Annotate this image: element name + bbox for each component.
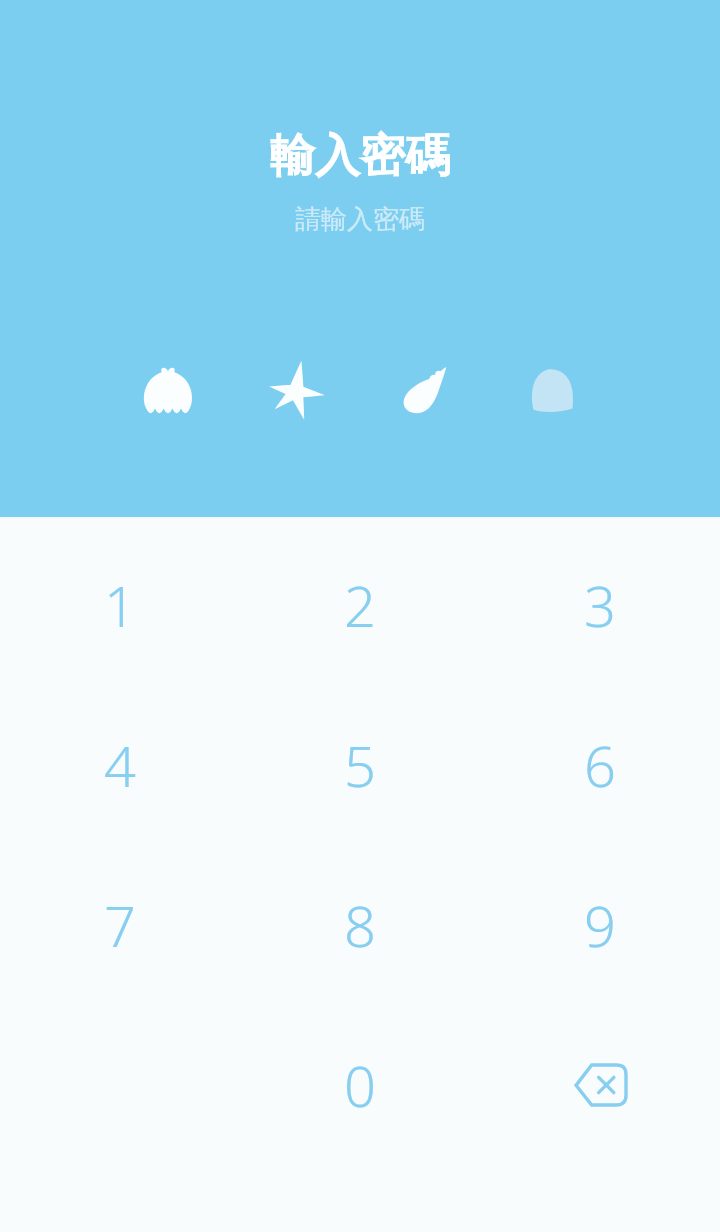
button[interactable]: 6 — [540, 705, 660, 825]
staticText: 6 — [584, 727, 616, 803]
staticText: 0 — [344, 1047, 376, 1123]
button[interactable]: 0 — [300, 1025, 420, 1145]
staticText: 7 — [104, 887, 136, 963]
staticText: 1 — [104, 567, 136, 643]
staticText: 8 — [344, 887, 376, 963]
button[interactable]: 5 — [300, 705, 420, 825]
staticText: 輸入密碼 — [270, 128, 450, 185]
button[interactable]: 9 — [540, 865, 660, 985]
staticText: 4 — [104, 727, 136, 803]
button[interactable]: 1 — [60, 545, 180, 665]
button[interactable]: 7 — [60, 865, 180, 985]
staticText: 請輸入密碼 — [295, 203, 425, 236]
button[interactable]: 8 — [300, 865, 420, 985]
button[interactable]: 2 — [300, 545, 420, 665]
staticText: 2 — [344, 567, 376, 643]
staticText: 5 — [344, 727, 376, 803]
button[interactable]: 3 — [540, 545, 660, 665]
button[interactable]: Backspace — [540, 1025, 660, 1145]
button[interactable]: 4 — [60, 705, 180, 825]
staticText: 9 — [584, 887, 616, 963]
staticText: 3 — [584, 567, 616, 643]
